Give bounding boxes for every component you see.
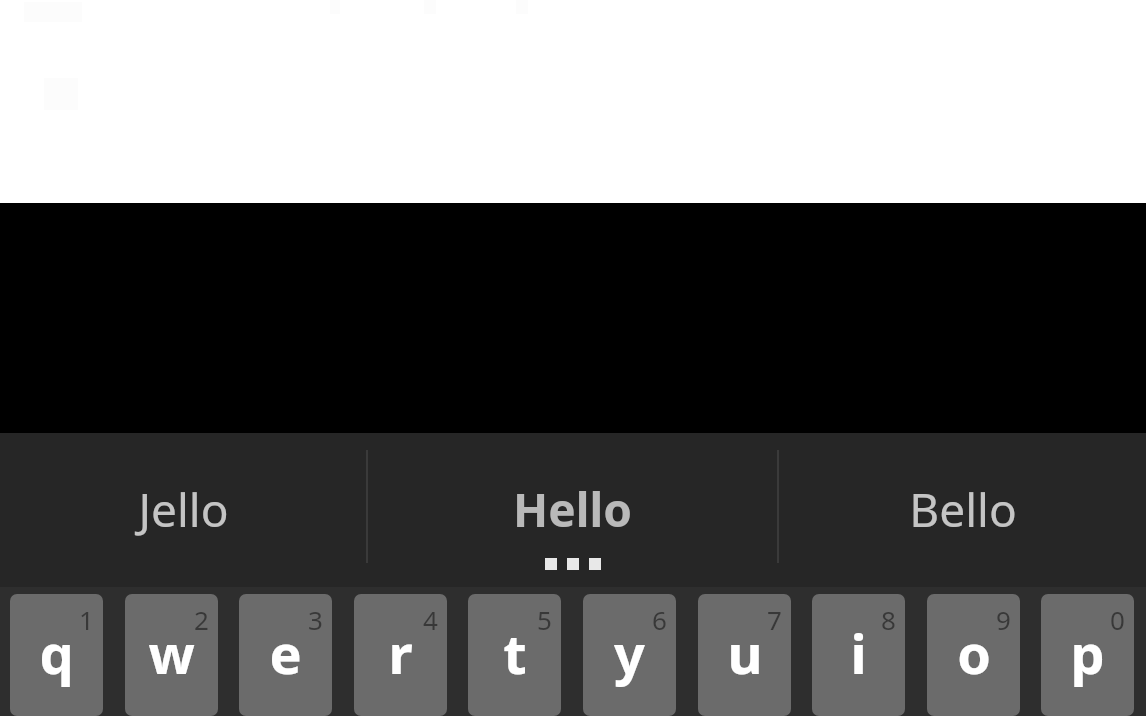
button[interactable]: Key y <box>583 594 676 716</box>
staticText: 7 <box>767 602 782 637</box>
button[interactable]: Key i <box>812 594 905 716</box>
button[interactable]: Key t <box>468 594 561 716</box>
staticText: 2 <box>194 602 209 637</box>
button[interactable]: Key w <box>125 594 218 716</box>
staticText: o <box>957 616 991 690</box>
button[interactable]: Key u <box>698 594 791 716</box>
staticText: Jello <box>138 478 229 541</box>
staticText: 0 <box>1110 602 1125 637</box>
staticText: i <box>850 616 867 690</box>
staticText: 8 <box>881 602 896 637</box>
staticText: 4 <box>423 602 438 637</box>
button[interactable]: Hello <box>368 433 777 587</box>
staticText: q <box>39 616 74 690</box>
staticText: 3 <box>308 602 323 637</box>
staticText: u <box>727 616 763 690</box>
button[interactable]: Key e <box>239 594 332 716</box>
staticText: e <box>269 616 302 690</box>
staticText: 5 <box>537 602 552 637</box>
button[interactable]: Jello <box>0 433 366 587</box>
staticText: r <box>388 616 413 690</box>
staticText: 1 <box>79 602 94 637</box>
staticText: 6 <box>652 602 667 637</box>
button[interactable]: Key o <box>927 594 1020 716</box>
staticText: p <box>1070 616 1105 690</box>
button[interactable]: Bello <box>779 433 1146 587</box>
button[interactable]: Key r <box>354 594 447 716</box>
staticText: Hello <box>513 478 632 541</box>
staticText: 9 <box>996 602 1011 637</box>
staticText: w <box>148 616 195 690</box>
staticText: t <box>503 616 527 690</box>
staticText: Bello <box>909 478 1017 541</box>
staticText: y <box>614 616 645 690</box>
button[interactable]: Key p <box>1041 594 1134 716</box>
button[interactable]: Key q <box>10 594 103 716</box>
